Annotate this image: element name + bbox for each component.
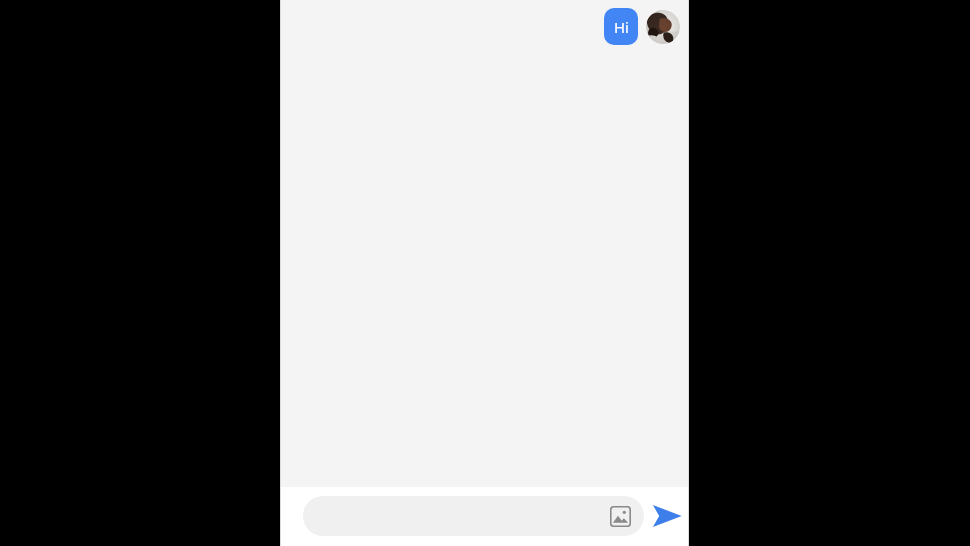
button[interactable]: Attach image [303, 496, 644, 536]
button[interactable]: Attach image [608, 504, 632, 528]
staticText: Hi [614, 17, 629, 37]
button[interactable]: Send [649, 498, 685, 534]
button[interactable]: Hi [604, 8, 638, 45]
button[interactable]: Profile photo [646, 10, 680, 44]
